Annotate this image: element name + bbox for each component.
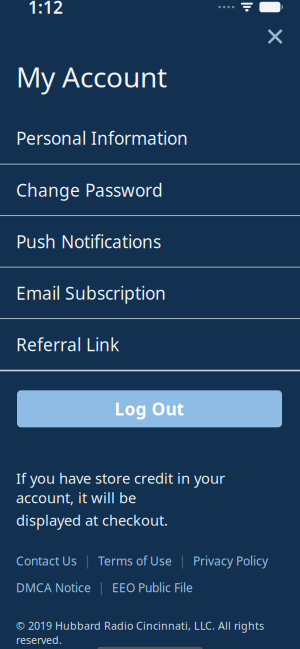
staticText: Log Out <box>114 397 184 420</box>
staticText: | <box>179 553 186 569</box>
button[interactable]: Log Out <box>17 390 282 427</box>
staticText: Terms of Use <box>98 553 172 569</box>
button[interactable]: Close <box>258 22 292 52</box>
staticText: © 2019 Hubbard Radio Cincinnati, LLC. Al… <box>16 619 264 647</box>
button[interactable]: DMCA Notice <box>16 580 91 596</box>
button[interactable]: Change Password <box>0 165 300 215</box>
button[interactable]: Push Notifications <box>0 216 300 267</box>
staticText: EEO Public File <box>112 580 193 596</box>
button[interactable]: Referral Link <box>0 319 300 370</box>
staticText: | <box>84 553 91 569</box>
button[interactable]: EEO Public File <box>112 580 193 596</box>
staticText: Change Password <box>16 178 163 201</box>
button[interactable]: Terms of Use <box>98 553 172 569</box>
button[interactable]: Email Subscription <box>0 268 300 318</box>
button[interactable]: Privacy Policy <box>193 553 268 569</box>
staticText: Email Subscription <box>16 281 166 304</box>
staticText: Contact Us <box>16 553 77 569</box>
staticText: If you have store credit in your account… <box>16 468 225 507</box>
staticText: Privacy Policy <box>193 553 268 569</box>
staticText: My Account <box>16 58 167 95</box>
staticText: Referral Link <box>16 333 119 356</box>
staticText: 1:12 <box>28 0 63 18</box>
staticText: | <box>98 580 105 596</box>
staticText: DMCA Notice <box>16 580 91 596</box>
staticText: Push Notifications <box>16 230 161 253</box>
button[interactable]: Personal Information <box>0 112 300 164</box>
staticText: displayed at checkout. <box>16 510 168 530</box>
staticText: ✕ <box>264 23 285 51</box>
staticText: Personal Information <box>16 126 188 149</box>
button[interactable]: Contact Us <box>16 553 77 569</box>
